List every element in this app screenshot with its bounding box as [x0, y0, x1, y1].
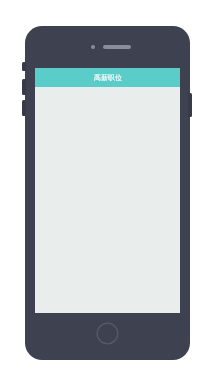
- button[interactable]: 高薪职位: [35, 68, 180, 87]
- staticText: 高薪职位: [94, 73, 122, 82]
- button[interactable]: Volume up: [22, 79, 26, 95]
- button[interactable]: Volume down: [22, 100, 26, 116]
- button[interactable]: Home: [96, 322, 119, 345]
- button[interactable]: Power: [188, 93, 192, 117]
- button[interactable]: Mute switch: [22, 62, 26, 71]
